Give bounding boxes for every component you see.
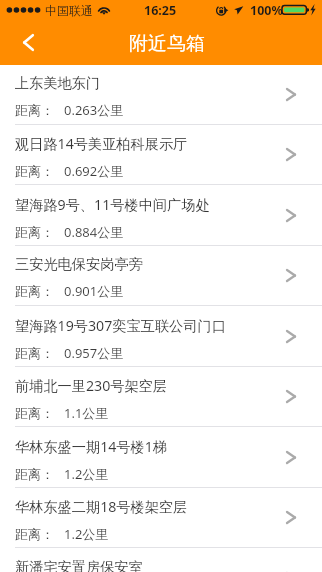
staticText: 0.957公里 bbox=[64, 344, 124, 362]
button[interactable]: 上东美地东门 bbox=[0, 65, 322, 125]
staticText: 0.884公里 bbox=[64, 223, 124, 241]
staticText: 上东美地东门 bbox=[15, 74, 101, 92]
button[interactable]: 望海路19号307奕宝互联公司门口 bbox=[0, 307, 322, 367]
staticText: 观日路14号美亚柏科展示厅 bbox=[15, 134, 188, 153]
staticText: 距离： bbox=[15, 405, 54, 421]
staticText: 前埔北一里230号架空层 bbox=[15, 376, 168, 395]
staticText: 16:25 bbox=[144, 2, 177, 19]
button[interactable]: Back bbox=[0, 20, 46, 65]
staticText: 华林东盛二期18号楼架空层 bbox=[15, 497, 188, 516]
staticText: 距离： bbox=[15, 466, 54, 482]
staticText: 100% bbox=[250, 2, 283, 19]
staticText: 1.2公里 bbox=[64, 465, 109, 483]
staticText: 1.1公里 bbox=[64, 404, 109, 422]
button[interactable]: 前埔北一里230号架空层 bbox=[0, 367, 322, 427]
staticText: 距离： bbox=[15, 345, 54, 361]
button[interactable]: 华林东盛一期14号楼1梯 bbox=[0, 428, 322, 488]
staticText: 距离： bbox=[15, 163, 54, 179]
button[interactable]: 望海路9号、11号楼中间广场处 bbox=[0, 186, 322, 246]
staticText: 中国联通 bbox=[45, 3, 93, 18]
staticText: 距离： bbox=[15, 102, 54, 118]
staticText: 距离： bbox=[15, 224, 54, 240]
staticText: 三安光电保安岗亭旁 bbox=[15, 255, 143, 273]
staticText: 距离： bbox=[15, 526, 54, 542]
button[interactable]: 华林东盛二期18号楼架空层 bbox=[0, 488, 322, 548]
staticText: 距离： bbox=[15, 283, 54, 299]
staticText: 0.901公里 bbox=[64, 282, 124, 300]
button[interactable]: 三安光电保安岗亭旁 bbox=[0, 246, 322, 306]
staticText: 1.2公里 bbox=[64, 525, 109, 543]
staticText: 望海路19号307奕宝互联公司门口 bbox=[15, 316, 226, 335]
staticText: 新潘宅安置房保安室 bbox=[15, 558, 143, 572]
staticText: 华林东盛一期14号楼1梯 bbox=[15, 437, 168, 456]
button[interactable]: 观日路14号美亚柏科展示厅 bbox=[0, 125, 322, 185]
staticText: 附近鸟箱 bbox=[129, 32, 205, 56]
staticText: 望海路9号、11号楼中间广场处 bbox=[15, 195, 210, 214]
staticText: 0.692公里 bbox=[64, 162, 124, 180]
button[interactable]: 新潘宅安置房保安室 bbox=[0, 549, 322, 572]
staticText: 0.263公里 bbox=[64, 101, 124, 119]
